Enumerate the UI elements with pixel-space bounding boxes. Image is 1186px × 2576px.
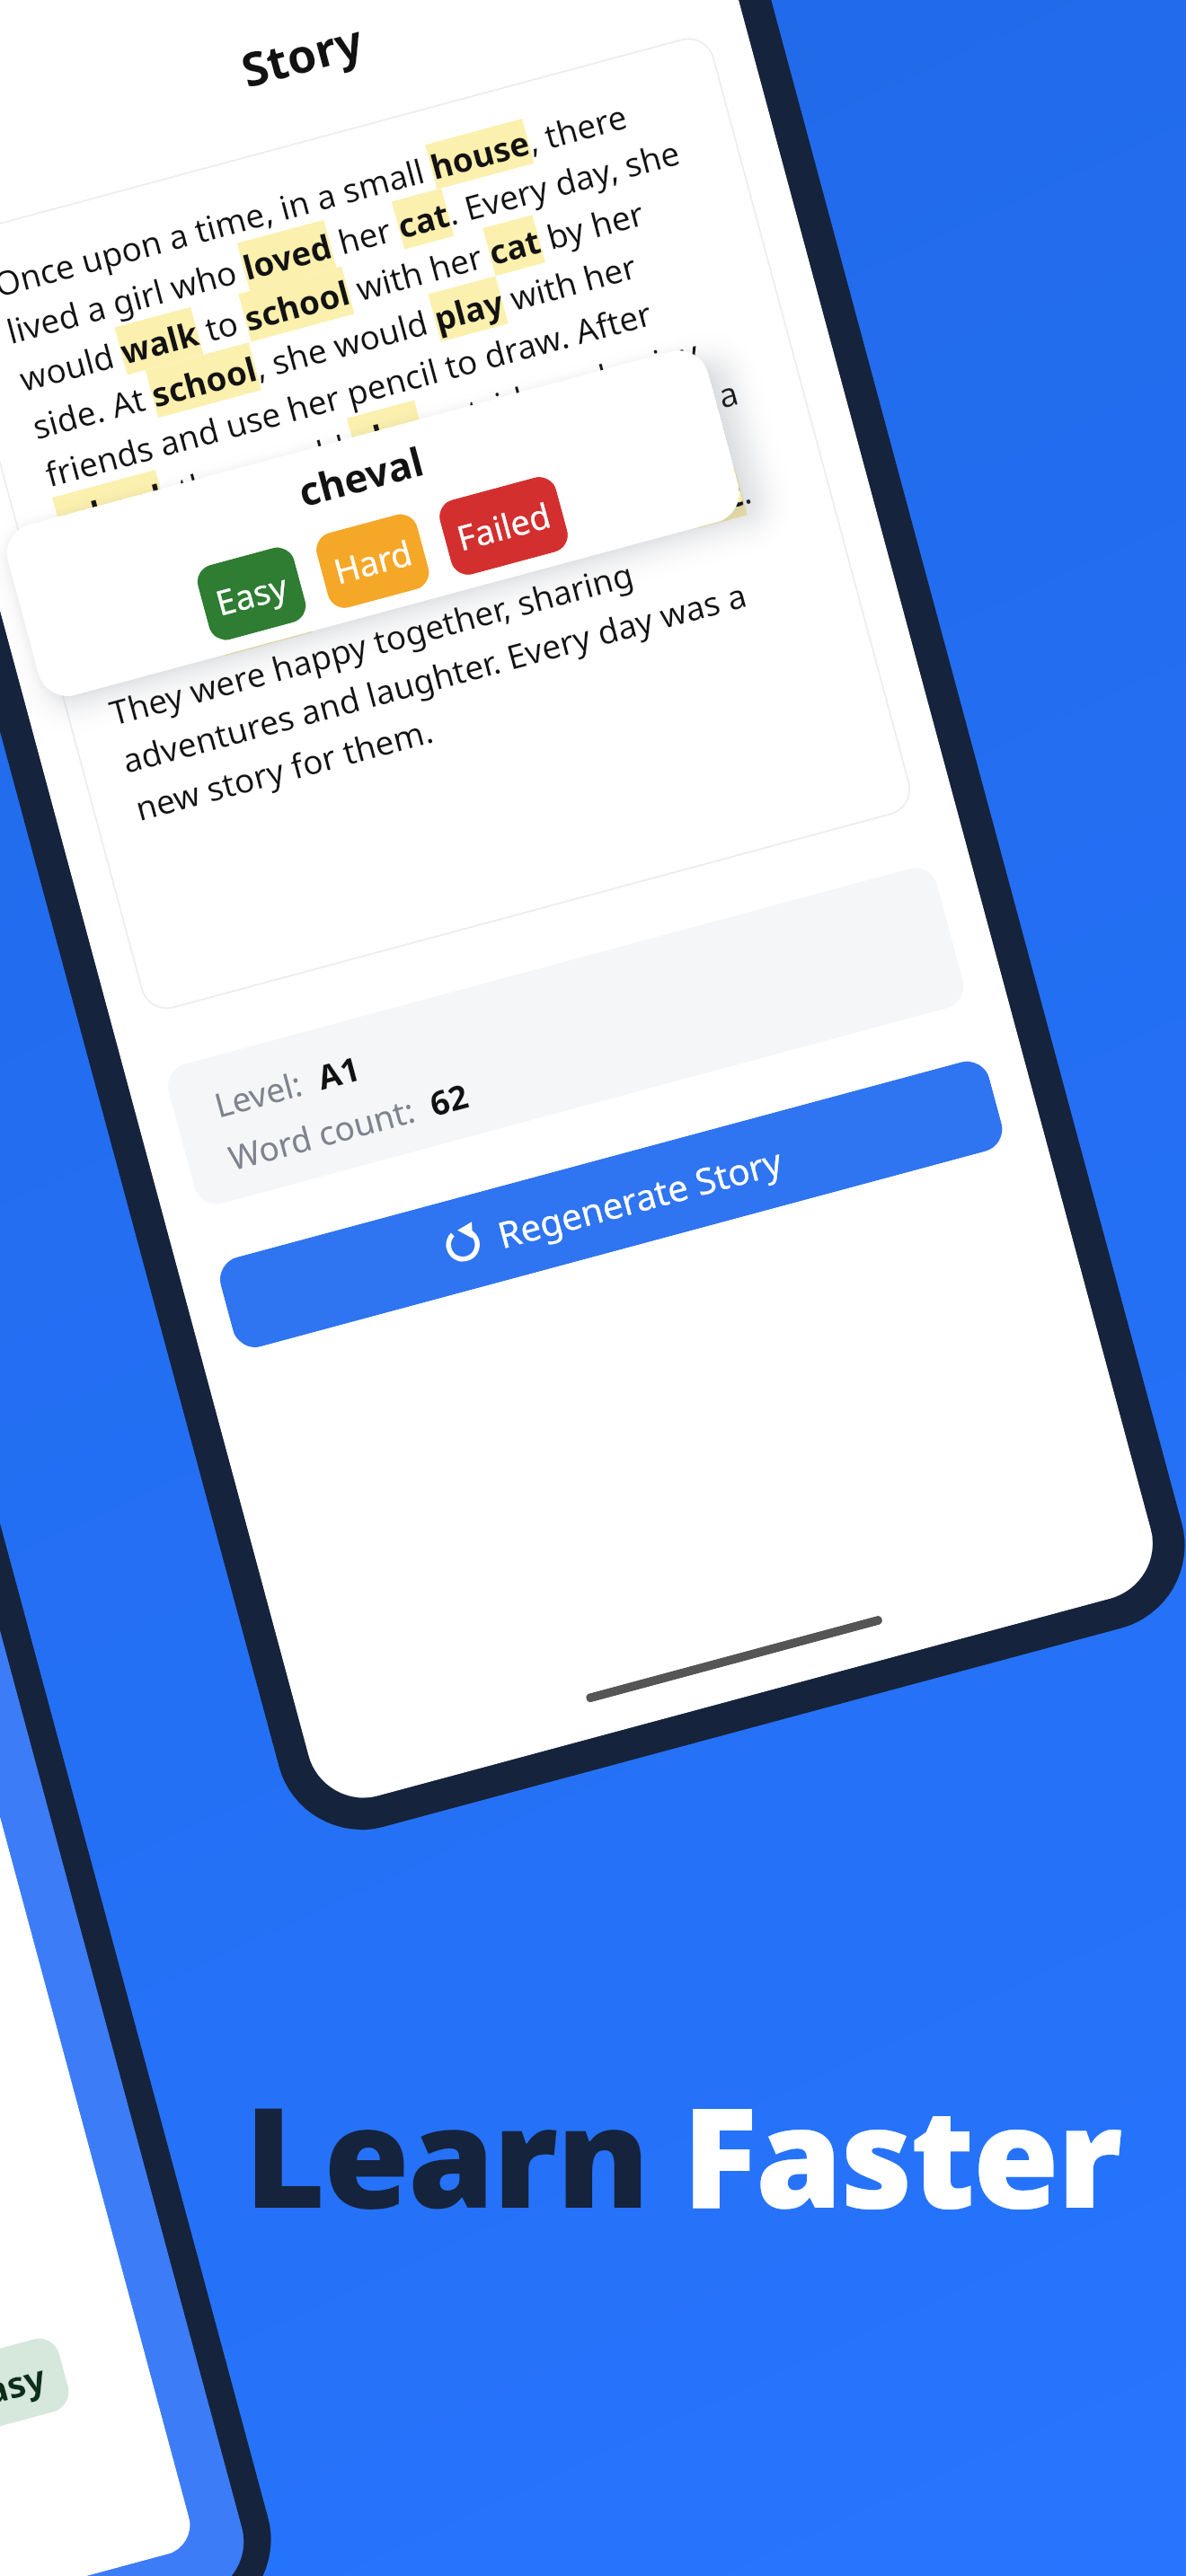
staticText: Regenerate Story (492, 1136, 787, 1259)
staticText: Word count: (223, 1084, 428, 1179)
staticText: Hard (328, 528, 417, 594)
button[interactable]: Easy (193, 543, 310, 644)
button[interactable]: Hard (312, 510, 433, 612)
staticText: 62 (416, 1072, 473, 1128)
staticText: Story (234, 7, 369, 101)
button[interactable]: Regenerate (215, 1056, 1008, 1352)
staticText: Failed (452, 491, 556, 561)
staticText: cheval (292, 433, 429, 519)
staticText: Once upon a time, in a small house, ther… (0, 78, 829, 831)
staticText: Level: (209, 1058, 315, 1127)
staticText: Easy (210, 562, 293, 626)
button[interactable]: Easy (0, 2334, 73, 2438)
staticText: Learn Faster (244, 2059, 1121, 2248)
button[interactable]: Failed (435, 473, 572, 579)
other: Regenerate (438, 1219, 488, 1270)
staticText: Easy (0, 2352, 51, 2420)
staticText: A1 (304, 1045, 365, 1101)
